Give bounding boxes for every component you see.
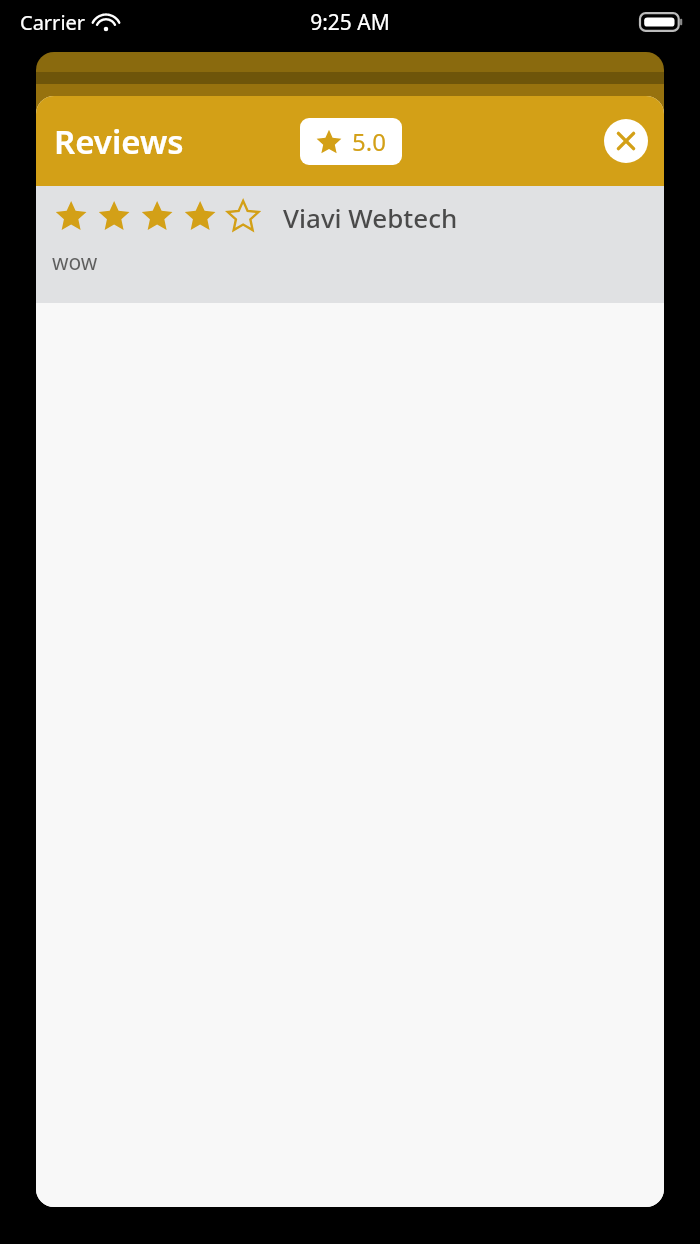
- staticText: 5.0: [352, 125, 386, 158]
- staticText: Reviews: [54, 119, 184, 164]
- staticText: wow: [52, 248, 98, 277]
- button[interactable]: Viavi Webtech: [36, 186, 664, 303]
- button[interactable]: Close: [604, 119, 648, 163]
- staticText: Carrier: [20, 9, 86, 36]
- staticText: 9:25 AM: [310, 8, 390, 37]
- button[interactable]: 5.0: [300, 118, 402, 165]
- staticText: Viavi Webtech: [283, 200, 458, 235]
